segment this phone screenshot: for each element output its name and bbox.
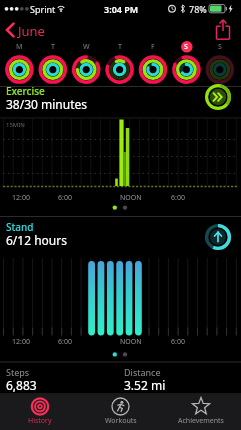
staticText: 3:04 PM [104, 3, 139, 15]
staticText: NOON [120, 193, 142, 203]
button[interactable] [37, 40, 69, 84]
staticText: S [184, 42, 188, 52]
button[interactable] [0, 18, 60, 44]
staticText: Stand [6, 220, 34, 234]
button[interactable] [170, 40, 202, 84]
button[interactable] [204, 83, 232, 111]
staticText: T [118, 42, 122, 52]
staticText: NOON [120, 337, 142, 347]
staticText: Workouts [105, 416, 137, 426]
staticText: 6:00 [171, 193, 185, 203]
staticText: Sprint [30, 3, 56, 15]
button[interactable] [137, 40, 169, 84]
staticText: 6:00 [171, 337, 185, 347]
button[interactable] [208, 16, 241, 44]
staticText: S [218, 42, 222, 52]
button[interactable]: Workouts [80, 395, 161, 430]
staticText: Achievements [178, 416, 224, 426]
button[interactable] [104, 40, 136, 84]
staticText: 3.52 mi [124, 377, 166, 393]
staticText: T [51, 42, 55, 52]
staticText: 6,883 [6, 377, 37, 393]
button[interactable] [204, 40, 236, 84]
button[interactable] [3, 40, 35, 84]
staticText: Exercise [6, 84, 45, 98]
staticText: 6/12 hours [6, 232, 67, 248]
staticText: June [18, 22, 45, 40]
staticText: F [151, 42, 155, 52]
button[interactable] [70, 40, 102, 84]
button[interactable]: Achievements [161, 395, 241, 430]
staticText: Distance [124, 366, 161, 378]
staticText: 38/30 minutes [6, 96, 88, 112]
staticText: 6:00 [58, 337, 72, 347]
staticText: M [16, 42, 23, 52]
button[interactable] [204, 223, 232, 251]
button[interactable]: History [0, 395, 80, 430]
staticText: 15MIN [6, 121, 25, 129]
staticText: 6:00 [58, 193, 72, 203]
staticText: History [28, 416, 52, 426]
staticText: Steps [6, 366, 30, 378]
staticText: 78% [189, 3, 207, 15]
staticText: W [83, 42, 90, 52]
staticText: 12:00 [12, 337, 30, 347]
staticText: 12:00 [12, 193, 30, 203]
